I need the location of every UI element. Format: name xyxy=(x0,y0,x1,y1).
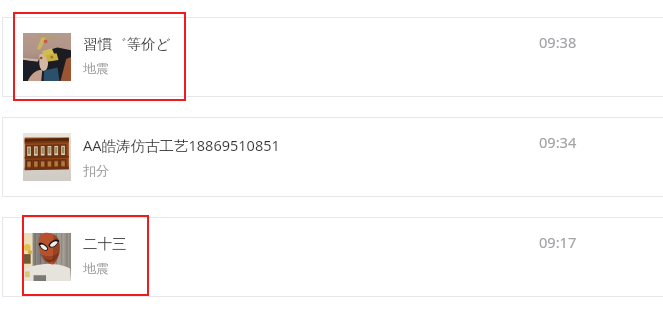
staticText: 扣分 xyxy=(83,162,109,178)
staticText: 09:34 xyxy=(539,132,577,152)
staticText: AA皓涛仿古工艺18869510851 xyxy=(83,135,280,155)
staticText: 09:17 xyxy=(539,232,577,252)
staticText: 地震 xyxy=(83,260,109,276)
button[interactable]: 習慣゛等价ど xyxy=(0,17,663,97)
staticText: 09:38 xyxy=(539,32,577,52)
staticText: 二十三 xyxy=(83,235,127,253)
button[interactable]: AA皓涛仿古工艺18869510851 xyxy=(0,117,663,197)
staticText: 地震 xyxy=(83,60,109,76)
staticText: 習慣゛等价ど xyxy=(83,35,171,53)
button[interactable]: 二十三 xyxy=(0,217,663,297)
